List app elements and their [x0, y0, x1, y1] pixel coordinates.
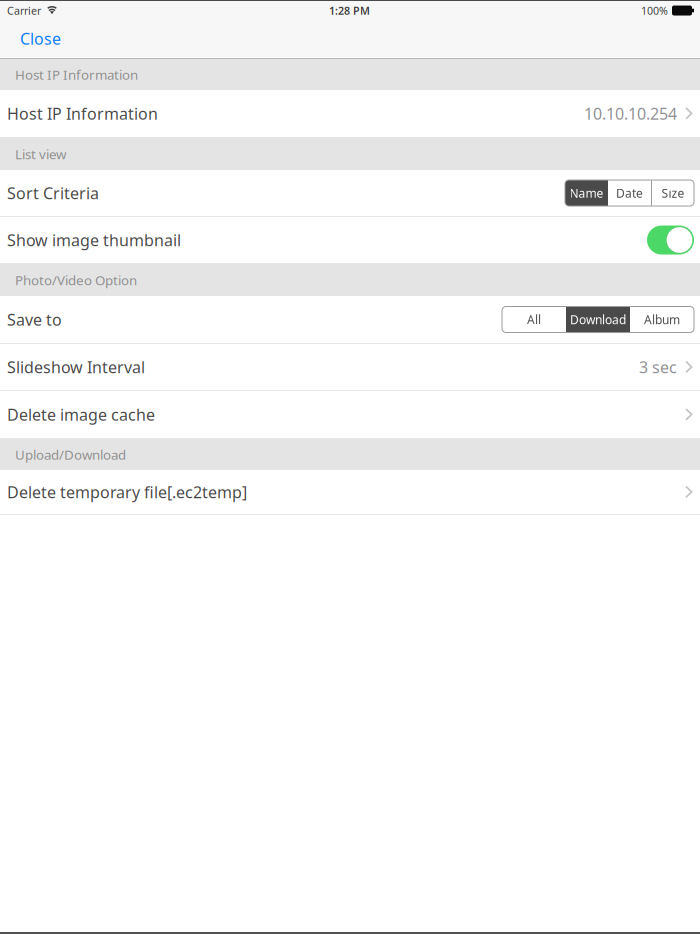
staticText: 100% — [641, 3, 668, 18]
staticText: Show image thumbnail — [7, 229, 181, 251]
button[interactable]: Name — [565, 180, 608, 206]
button[interactable]: Delete temporary file[.ec2temp] — [0, 470, 700, 515]
button[interactable]: Date — [608, 180, 651, 206]
staticText: Album — [644, 311, 680, 327]
button[interactable]: Show image thumbnail — [647, 225, 694, 254]
staticText: Close — [20, 28, 61, 49]
button[interactable]: Download — [566, 306, 630, 332]
staticText: Upload/Download — [15, 446, 126, 463]
button[interactable]: Slideshow Interval — [0, 344, 700, 391]
button[interactable]: Save to — [0, 296, 700, 344]
button[interactable]: Size — [652, 180, 694, 206]
button[interactable]: Host IP Information — [0, 90, 700, 138]
staticText: Slideshow Interval — [7, 356, 145, 378]
staticText: Carrier — [7, 3, 41, 18]
staticText: Sort Criteria — [7, 182, 99, 204]
button[interactable]: Album — [630, 306, 694, 332]
staticText: All — [527, 311, 541, 327]
staticText: Delete image cache — [7, 404, 155, 425]
staticText: Host IP Information — [7, 103, 158, 124]
button[interactable]: Sort Criteria — [0, 170, 700, 217]
staticText: Date — [616, 185, 643, 201]
staticText: 10.10.10.254 — [584, 103, 677, 124]
button[interactable]: All — [502, 306, 566, 332]
staticText: List view — [15, 145, 66, 163]
staticText: 3 sec — [639, 356, 677, 378]
button[interactable]: Close — [9, 20, 72, 57]
staticText: Size — [661, 185, 684, 201]
staticText: Save to — [7, 309, 62, 330]
staticText: Photo/Video Option — [15, 271, 137, 289]
button[interactable]: Delete image cache — [0, 391, 700, 439]
staticText: Name — [569, 185, 603, 201]
staticText: Host IP Information — [15, 66, 138, 83]
staticText: Download — [570, 311, 626, 327]
staticText: Delete temporary file[.ec2temp] — [7, 481, 247, 503]
staticText: 1:28 PM — [329, 3, 370, 18]
